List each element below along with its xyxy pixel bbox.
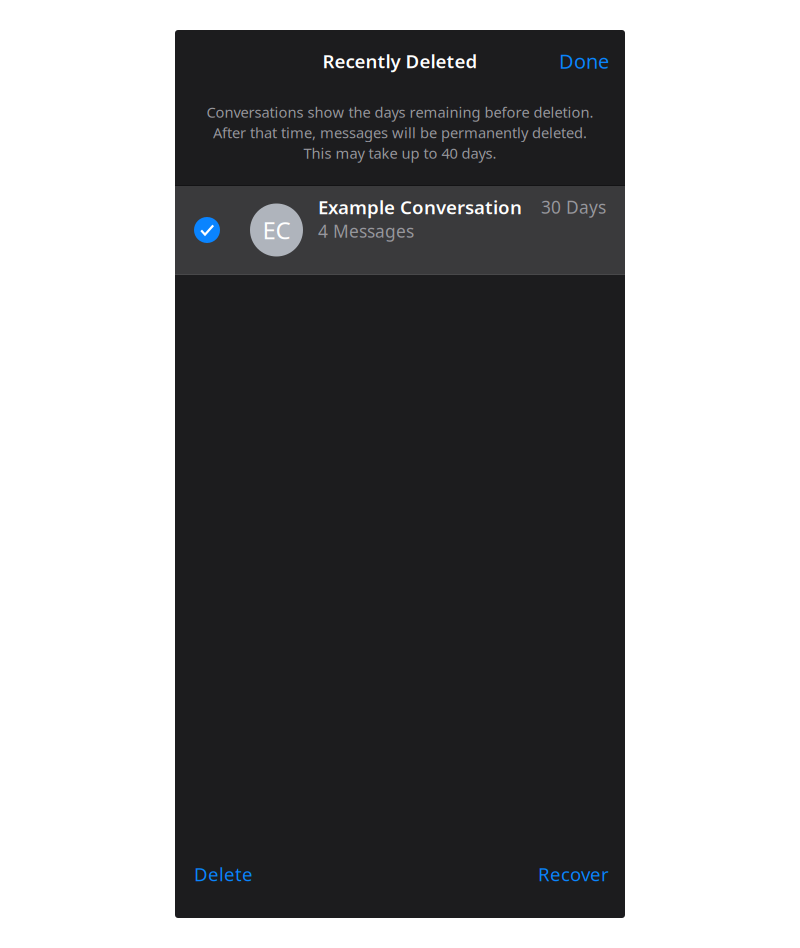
staticText: Recently Deleted <box>322 49 477 73</box>
button[interactable]: Deselect Example Conversation <box>194 217 220 243</box>
button[interactable]: EC <box>175 186 625 274</box>
staticText: Conversations show the days remaining be… <box>206 102 593 122</box>
staticText: Done <box>559 48 609 74</box>
button[interactable]: Delete <box>186 850 261 898</box>
staticText: This may take up to 40 days. <box>303 143 496 163</box>
staticText: Delete <box>194 862 253 886</box>
staticText: After that time, messages will be perman… <box>213 123 587 142</box>
staticText: EC <box>262 214 290 246</box>
staticText: 4 Messages <box>318 219 414 242</box>
button[interactable]: Done <box>551 40 617 82</box>
staticText: 30 Days <box>541 195 606 218</box>
staticText: Recover <box>538 862 609 886</box>
button[interactable]: Recover <box>530 850 617 898</box>
staticText: Example Conversation <box>318 195 522 219</box>
